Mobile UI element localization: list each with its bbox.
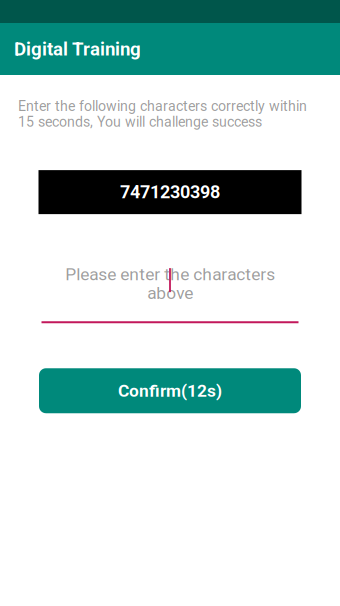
staticText: 7471230398 [120,182,220,203]
button[interactable]: Please enter the characters above [41,264,298,303]
staticText: Please enter the characters above [65,264,275,303]
button[interactable]: Confirm(12s) [39,368,301,413]
staticText: Digital Training [14,38,141,60]
staticText: Enter the following characters correctly… [18,98,307,130]
staticText: Confirm(12s) [118,381,222,401]
